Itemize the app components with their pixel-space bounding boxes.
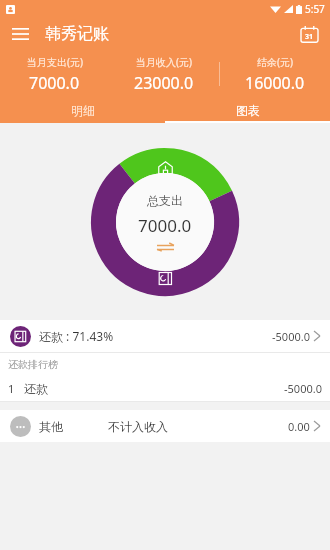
staticText: 其他 bbox=[39, 419, 63, 434]
staticText: 7000.0 bbox=[138, 214, 192, 237]
button[interactable]: 1 bbox=[0, 375, 330, 401]
button[interactable]: 还款 : 71.43% bbox=[0, 320, 330, 352]
staticText: 图表 bbox=[236, 103, 260, 118]
staticText: 5:57 bbox=[305, 2, 325, 16]
staticText: 还款 bbox=[24, 381, 48, 396]
button[interactable]: 图表 bbox=[165, 98, 330, 123]
staticText: 7000.0 bbox=[29, 72, 80, 94]
staticText: -5000.0 bbox=[272, 329, 310, 344]
staticText: 韩秀记账 bbox=[45, 24, 109, 44]
staticText: 总支出 bbox=[147, 193, 183, 208]
staticText: 结余(元) bbox=[257, 55, 293, 69]
button[interactable]: Menu bbox=[6, 20, 34, 48]
staticText: 31 bbox=[305, 32, 314, 42]
staticText: 不计入收入 bbox=[108, 419, 168, 434]
button[interactable]: Calendar bbox=[296, 21, 322, 47]
button[interactable]: 其他 bbox=[0, 410, 330, 442]
staticText: 16000.0 bbox=[245, 72, 305, 94]
staticText: 0.00 bbox=[288, 419, 310, 434]
staticText: 明细 bbox=[71, 103, 95, 118]
staticText: 1 bbox=[8, 381, 15, 396]
staticText: 还款排行榜 bbox=[8, 358, 58, 371]
staticText: -5000.0 bbox=[284, 381, 322, 396]
staticText: 当月支出(元) bbox=[27, 55, 83, 69]
staticText: 还款 : 71.43% bbox=[39, 328, 114, 344]
button[interactable]: 明细 bbox=[0, 98, 165, 123]
staticText: 当月收入(元) bbox=[136, 55, 192, 69]
staticText: 23000.0 bbox=[134, 72, 194, 94]
